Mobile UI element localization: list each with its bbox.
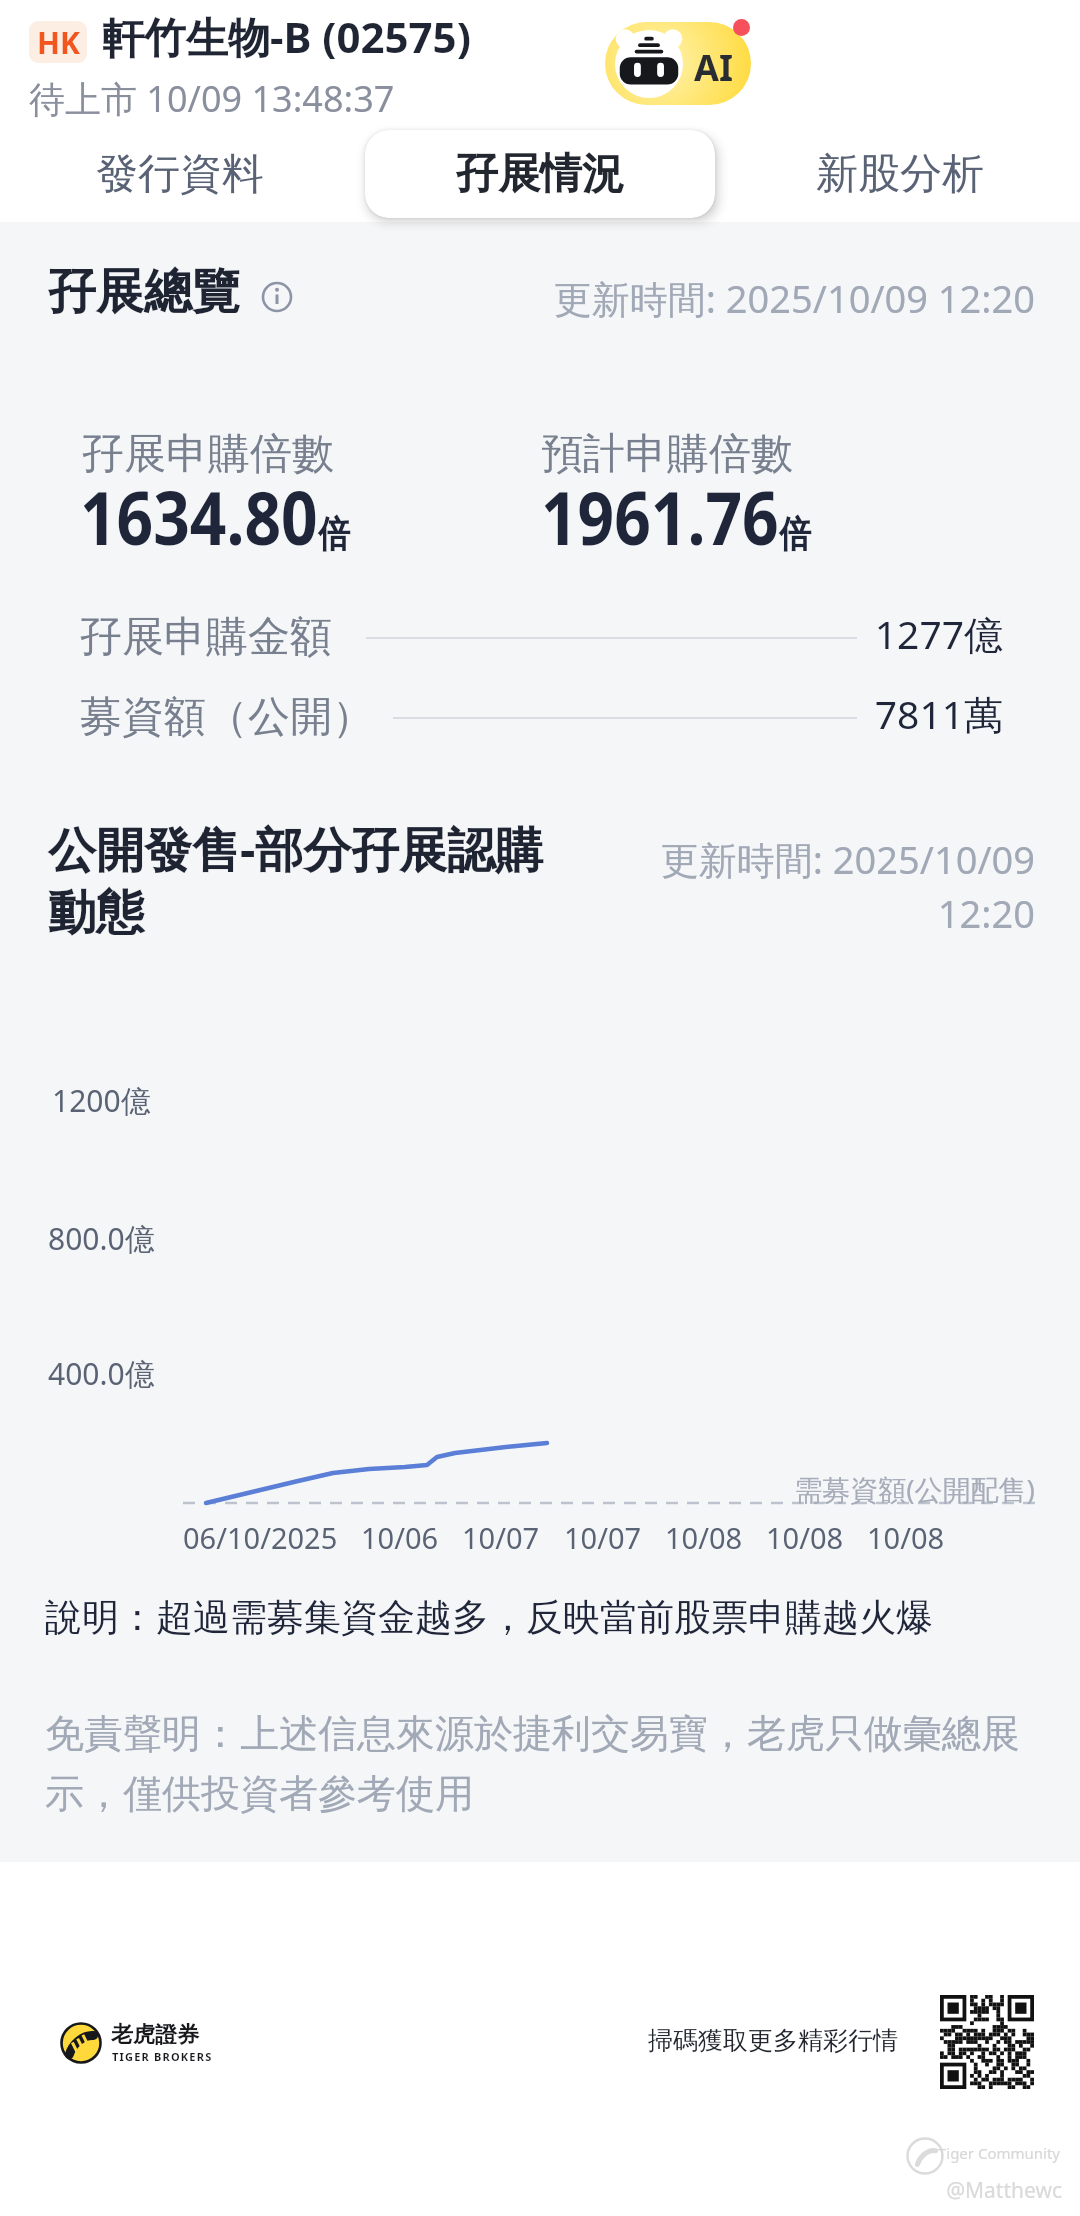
staticText: 更新時間: 2025/10/09 12:20	[660, 833, 1035, 939]
staticText: 老虎證券	[111, 2021, 199, 2049]
staticText: 掃碼獲取更多精彩行情	[648, 2025, 898, 2056]
staticText: 預計申購倍數	[541, 428, 793, 481]
staticText: 10/07	[564, 1518, 642, 1557]
staticText: Tiger Community	[937, 2143, 1060, 2163]
staticText: 1200億	[52, 1080, 151, 1121]
staticText: 需募資額(公開配售)	[794, 1470, 1035, 1508]
staticText: 發行資料	[96, 148, 264, 201]
staticText: 孖展申購金額	[80, 611, 332, 664]
staticText: 說明：超過需募集資金越多，反映當前股票申購越火爆	[45, 1594, 933, 1641]
staticText: 孖展申購倍數	[82, 428, 334, 481]
staticText: 倍	[318, 512, 350, 558]
staticText: 800.0億	[48, 1218, 155, 1259]
staticText: 1277億	[874, 607, 1003, 660]
staticText: 待上市 10/09 13:48:37	[29, 74, 395, 123]
button[interactable]: 發行資料	[45, 130, 315, 218]
staticText: 06/10/2025	[183, 1518, 338, 1557]
staticText: 更新時間: 2025/10/09 12:20	[553, 272, 1035, 324]
staticText: TIGER BROKERS	[112, 2049, 213, 2064]
staticText: 400.0億	[48, 1353, 155, 1394]
staticText: @Matthewc	[946, 2176, 1062, 2205]
staticText: HK	[37, 22, 80, 63]
staticText: 新股分析	[816, 148, 984, 201]
button[interactable]: 新股分析	[765, 130, 1035, 218]
staticText: 10/07	[462, 1518, 540, 1557]
staticText: 募資額（公開）	[80, 691, 374, 744]
staticText: 孖展情況	[456, 148, 624, 201]
staticText: 7811萬	[874, 687, 1003, 740]
staticText: 公開發售-部分孖展認購 動態	[48, 816, 544, 944]
button[interactable]: AI	[605, 22, 751, 105]
staticText: 10/08	[867, 1518, 945, 1557]
button[interactable]: 孖展情況	[365, 130, 715, 218]
staticText: 10/08	[665, 1518, 743, 1557]
staticText: 免責聲明：上述信息來源於捷利交易寶，老虎只做彙總展 示，僅供投資者參考使用	[45, 1709, 1020, 1818]
staticText: 10/08	[766, 1518, 844, 1557]
staticText: 10/06	[361, 1518, 439, 1557]
staticText: AI	[694, 43, 733, 92]
staticText: 倍	[779, 512, 811, 558]
staticText: 1634.80	[80, 467, 318, 567]
staticText: 軒竹生物-B (02575)	[102, 8, 471, 65]
staticText: 1961.76	[541, 467, 779, 567]
staticText: 孖展總覽	[48, 262, 240, 322]
